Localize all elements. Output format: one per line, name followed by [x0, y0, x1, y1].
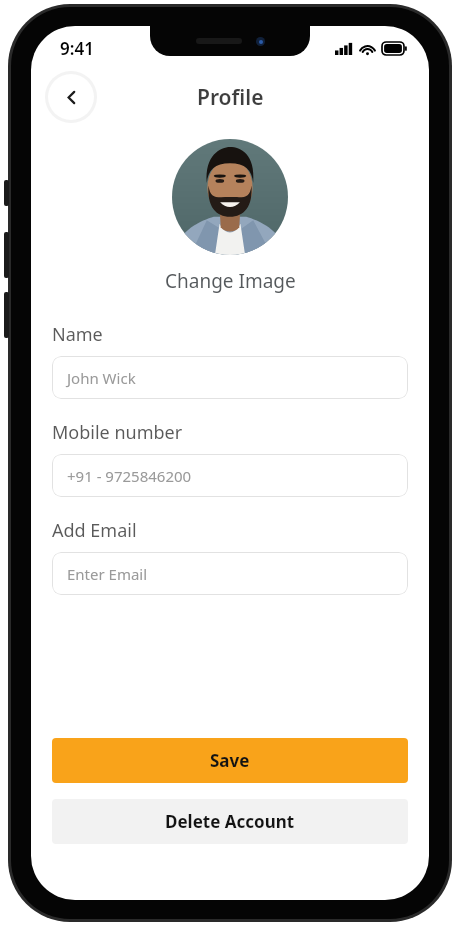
button[interactable]: +91 - 9725846200: [52, 454, 408, 497]
staticText: 9:41: [60, 37, 94, 60]
staticText: Change Image: [165, 268, 296, 294]
staticText: Add Email: [52, 518, 137, 543]
button[interactable]: John Wick: [52, 356, 408, 399]
button[interactable]: Enter Email: [52, 552, 408, 595]
staticText: Enter Email: [67, 564, 148, 584]
staticText: Mobile number: [52, 420, 183, 445]
staticText: John Wick: [67, 368, 136, 388]
staticText: Save: [210, 749, 250, 772]
button[interactable]: Profile photo: [172, 139, 288, 255]
button[interactable]: Back: [48, 74, 94, 120]
button[interactable]: Save: [52, 738, 408, 783]
staticText: Delete Account: [165, 810, 295, 833]
button[interactable]: Delete Account: [52, 799, 408, 844]
staticText: Profile: [197, 83, 264, 112]
staticText: +91 - 9725846200: [67, 466, 192, 486]
button[interactable]: Change Image: [159, 266, 302, 296]
staticText: Name: [52, 322, 103, 347]
